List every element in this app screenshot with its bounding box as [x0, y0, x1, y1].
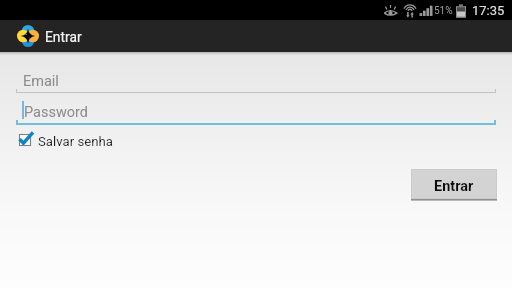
staticText: Entrar — [434, 178, 474, 195]
staticText: 51% — [434, 5, 453, 17]
staticText: Password — [24, 104, 89, 121]
button[interactable]: Password — [16, 101, 496, 125]
other: Battery 51 percent — [456, 4, 466, 18]
staticText: 17:35 — [472, 3, 505, 18]
other: Wi-Fi — [403, 3, 417, 18]
button[interactable]: Salvar senha — [16, 130, 116, 150]
staticText: Salvar senha — [38, 134, 113, 149]
button[interactable]: Entrar — [411, 169, 497, 202]
other: App icon — [17, 25, 39, 47]
other: Mobile signal — [419, 4, 433, 17]
staticText: Entrar — [45, 29, 82, 45]
other: Smart stay — [383, 4, 398, 17]
button[interactable]: App icon — [0, 20, 512, 52]
staticText: Email — [23, 73, 59, 90]
button[interactable]: Email — [16, 69, 496, 93]
